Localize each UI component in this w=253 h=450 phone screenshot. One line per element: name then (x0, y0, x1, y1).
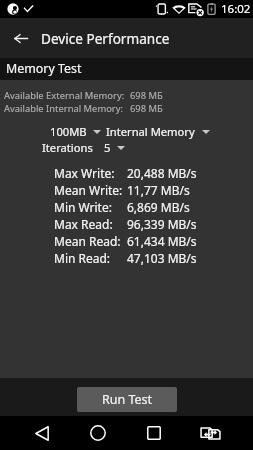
staticText: Device Performance (41, 29, 170, 48)
button[interactable]: Run Test (77, 387, 177, 412)
button[interactable]: Home (80, 416, 116, 450)
staticText: Iterations (42, 140, 93, 155)
staticText: 100MB (50, 124, 87, 139)
button[interactable]: 5 (104, 140, 125, 155)
staticText: 5 (104, 140, 111, 155)
staticText: Run Test (102, 391, 153, 408)
staticText: Memory Test (6, 60, 82, 77)
staticText: 61,434 MB/s (127, 233, 197, 249)
button[interactable]: Rotate screen (192, 416, 228, 450)
staticText: 20,488 MB/s (127, 165, 197, 181)
staticText: 47,103 MB/s (127, 250, 197, 266)
button[interactable]: 100MB (50, 124, 101, 139)
staticText: 96,339 MB/s (127, 216, 197, 232)
staticText: Min Read: (54, 250, 111, 266)
staticText: 698 МБ (130, 102, 163, 115)
staticText: 6,869 MB/s (127, 199, 190, 215)
staticText: Max Read: (54, 216, 113, 232)
staticText: Internal Memory (106, 124, 195, 139)
button[interactable]: Recent apps (136, 416, 172, 450)
staticText: 11,77 MB/s (127, 182, 190, 198)
button[interactable]: Back (0, 18, 41, 58)
staticText: Mean Read: (54, 233, 121, 249)
staticText: Max Write: (54, 165, 115, 181)
staticText: Min Write: (54, 199, 112, 215)
staticText: 16:02 (221, 1, 251, 17)
button[interactable]: Back (24, 416, 60, 450)
button[interactable]: Internal Memory (106, 124, 210, 139)
staticText: Available External Memory: (4, 89, 125, 102)
staticText: 698 МБ (130, 89, 163, 102)
staticText: Available Internal Memory: (4, 102, 124, 115)
staticText: Mean Write: (54, 182, 123, 198)
